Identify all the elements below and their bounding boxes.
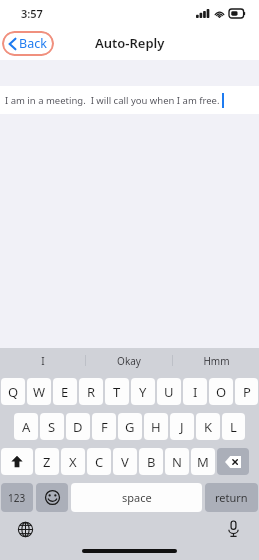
button[interactable]: W	[27, 378, 51, 405]
button[interactable]: 123	[1, 483, 33, 512]
staticText: C	[95, 453, 104, 471]
button[interactable]: H	[144, 413, 168, 440]
button[interactable]: I am in a meeting. I will call you when …	[0, 86, 259, 114]
button[interactable]: I	[0, 348, 85, 373]
button[interactable]: space	[71, 483, 202, 512]
button[interactable]: E	[53, 378, 77, 405]
button[interactable]: V	[113, 448, 137, 475]
staticText: M	[197, 453, 209, 471]
button[interactable]: A	[14, 413, 38, 440]
staticText: X	[69, 453, 77, 471]
button[interactable]: Change keyboard language	[16, 520, 34, 538]
staticText: E	[61, 383, 69, 401]
staticText: F	[101, 418, 108, 436]
staticText: Hmm	[203, 354, 230, 368]
staticText: Auto-Reply	[95, 34, 165, 52]
button[interactable]: D	[66, 413, 90, 440]
staticText: L	[230, 418, 237, 436]
button[interactable]: L	[222, 413, 245, 440]
button[interactable]: N	[165, 448, 189, 475]
staticText: B	[147, 453, 156, 471]
button[interactable]: G	[118, 413, 142, 440]
button[interactable]: return	[205, 483, 258, 512]
staticText: I	[193, 383, 198, 401]
button[interactable]: J	[170, 413, 194, 440]
staticText: W	[33, 383, 46, 401]
button[interactable]: B	[139, 448, 163, 475]
button[interactable]: U	[157, 378, 181, 405]
staticText: G	[125, 418, 135, 436]
button[interactable]: T	[105, 378, 129, 405]
button[interactable]: Dictate	[224, 520, 242, 538]
staticText: O	[216, 383, 227, 401]
staticText: I	[41, 354, 45, 368]
staticText: H	[151, 418, 161, 436]
staticText: Back	[19, 35, 47, 52]
staticText: P	[243, 383, 251, 401]
button[interactable]: S	[40, 413, 64, 440]
staticText: Z	[43, 453, 51, 471]
staticText: S	[48, 418, 56, 436]
button[interactable]: Z	[35, 448, 59, 475]
staticText: Okay	[117, 354, 141, 368]
button[interactable]: X	[61, 448, 85, 475]
button[interactable]: I	[183, 378, 207, 405]
staticText: A	[22, 418, 31, 436]
button[interactable]: Q	[1, 378, 25, 405]
staticText: 123	[8, 491, 26, 505]
button[interactable]: K	[196, 413, 220, 440]
button[interactable]: Y	[131, 378, 155, 405]
staticText: space	[122, 490, 152, 505]
staticText: D	[73, 418, 83, 436]
staticText: T	[113, 383, 121, 401]
staticText: 3:57	[21, 6, 43, 21]
staticText: return	[215, 490, 248, 505]
staticText: V	[121, 453, 129, 471]
button[interactable]: F	[92, 413, 116, 440]
button[interactable]: M	[191, 448, 215, 475]
staticText: U	[164, 383, 174, 401]
staticText: R	[87, 383, 96, 401]
button[interactable]: Hmm	[173, 348, 259, 373]
button[interactable]: O	[209, 378, 233, 405]
button[interactable]: C	[87, 448, 111, 475]
staticText: J	[180, 418, 184, 436]
button[interactable]: P	[235, 378, 258, 405]
button[interactable]: R	[79, 378, 103, 405]
staticText: K	[204, 418, 213, 436]
button[interactable]: Back	[2, 31, 54, 56]
button[interactable]: Emoji	[36, 483, 68, 512]
staticText: Y	[139, 383, 147, 401]
staticText: N	[172, 453, 182, 471]
staticText: I am in a meeting. I will call you when …	[5, 94, 220, 107]
button[interactable]: Backspace	[217, 448, 249, 475]
button[interactable]: Shift	[1, 448, 33, 475]
button[interactable]: Okay	[86, 348, 172, 373]
staticText: Q	[8, 383, 19, 401]
